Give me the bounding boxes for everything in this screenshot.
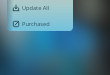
other: Update All xyxy=(13,5,19,11)
staticText: Update All xyxy=(22,4,50,12)
other: Purchased xyxy=(13,21,19,27)
staticText: Purchased xyxy=(22,20,50,28)
button[interactable]: Update All xyxy=(7,0,73,15)
button[interactable]: Purchased xyxy=(7,17,73,31)
